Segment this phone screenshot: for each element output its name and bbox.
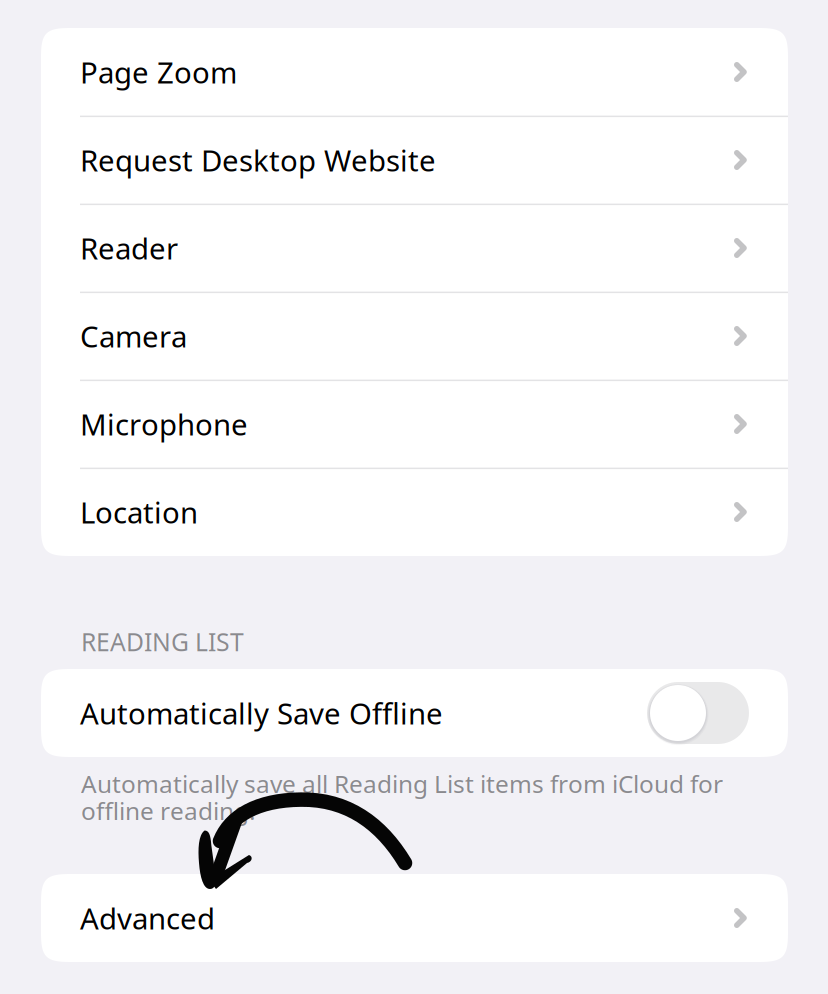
staticText: Location <box>80 492 198 532</box>
staticText: Automatically Save Offline <box>80 693 443 733</box>
button[interactable]: Location <box>41 468 788 556</box>
staticText: Camera <box>80 316 187 356</box>
button[interactable]: Advanced <box>41 874 788 962</box>
button[interactable]: Request Desktop Website <box>41 116 788 204</box>
staticText: READING LIST <box>81 625 244 659</box>
staticText: Automatically save all Reading List item… <box>81 767 723 800</box>
staticText: offline reading. <box>81 794 256 827</box>
staticText: Request Desktop Website <box>80 140 436 180</box>
staticText: Page Zoom <box>80 52 237 92</box>
button[interactable]: Automatically Save Offline <box>41 669 788 757</box>
button[interactable]: Reader <box>41 204 788 292</box>
staticText: Microphone <box>80 404 248 444</box>
button[interactable]: Camera <box>41 292 788 380</box>
staticText: Reader <box>80 228 178 268</box>
button[interactable]: Microphone <box>41 380 788 468</box>
button[interactable]: Page Zoom <box>41 28 788 116</box>
staticText: Advanced <box>80 898 215 938</box>
